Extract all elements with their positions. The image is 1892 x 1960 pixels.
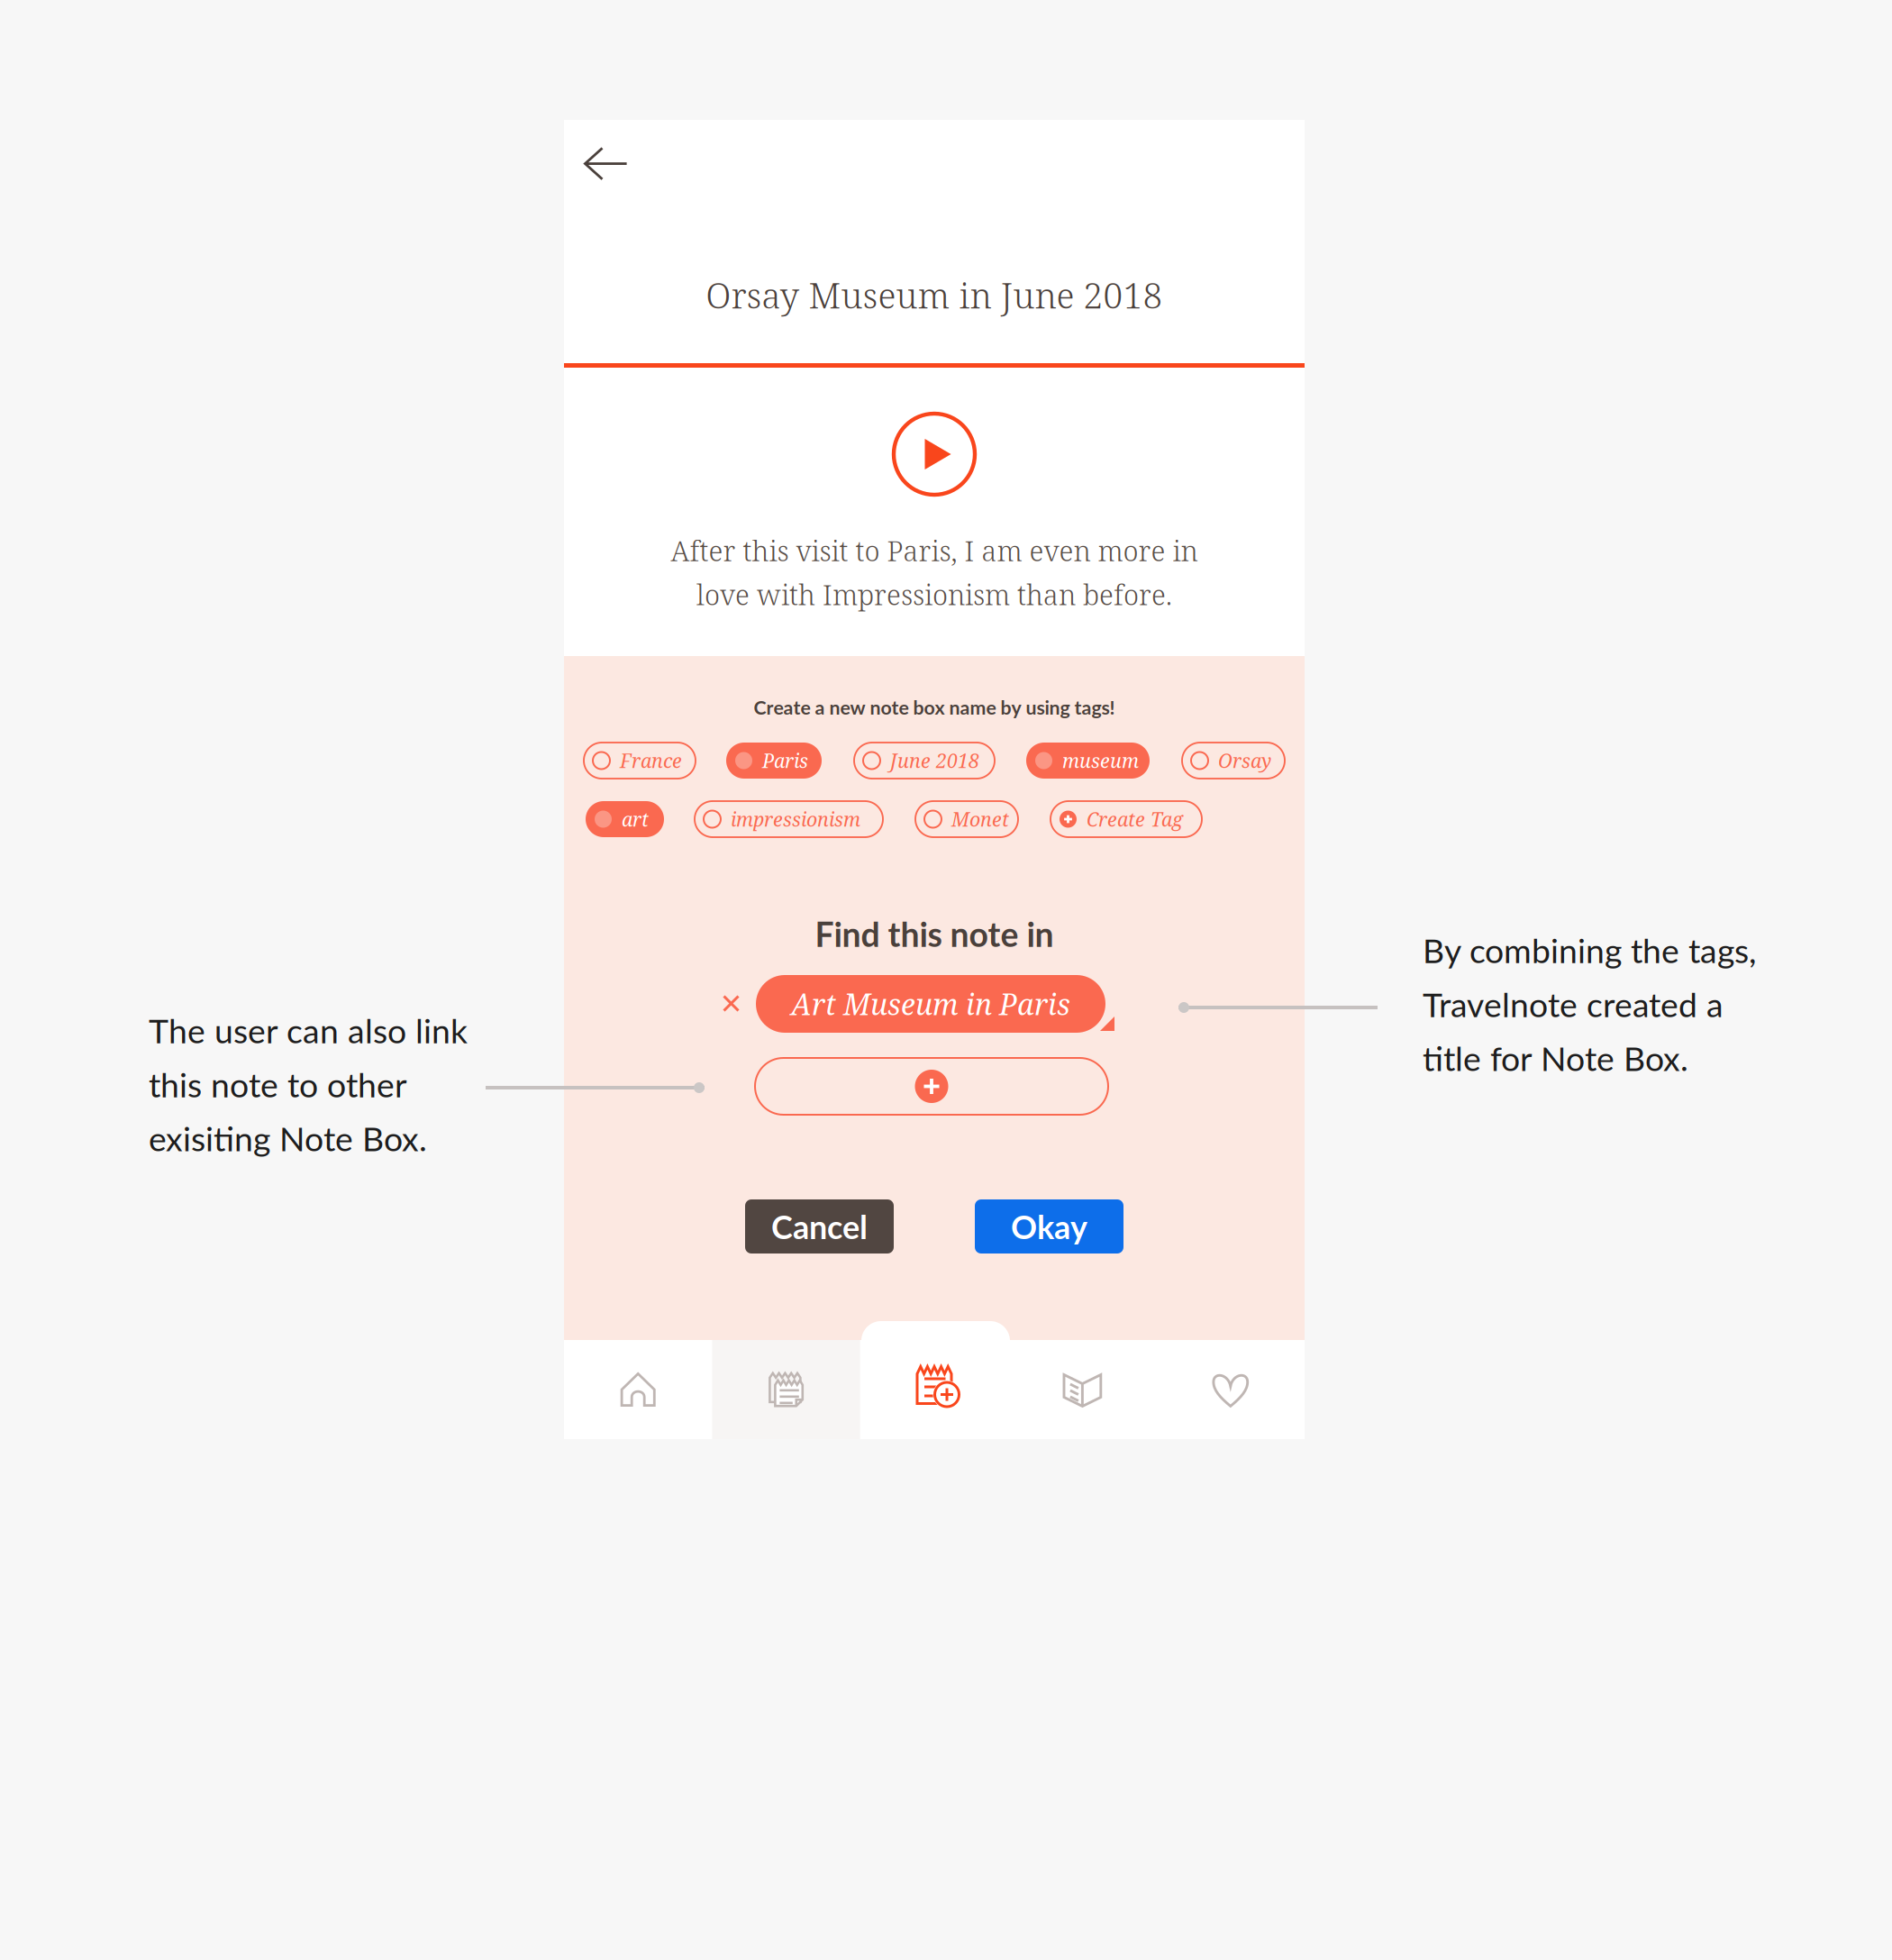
- staticText: By combining the tags,: [1423, 930, 1756, 970]
- staticText: Orsay Museum in June 2018: [706, 271, 1163, 319]
- button[interactable]: Paris: [726, 743, 822, 779]
- button[interactable]: Add to another note box: [755, 1058, 1108, 1115]
- staticText: museum: [1062, 748, 1139, 774]
- staticText: After this visit to Paris, I am even mor…: [671, 532, 1198, 569]
- staticText: Monet: [951, 806, 1009, 832]
- staticText: Create Tag: [1087, 806, 1183, 832]
- staticText: France: [620, 748, 682, 774]
- button[interactable]: Remove note box: [712, 984, 750, 1023]
- staticText: The user can also link: [149, 1010, 468, 1051]
- staticText: June 2018: [890, 748, 979, 774]
- button[interactable]: France: [584, 743, 696, 779]
- button[interactable]: Monet: [915, 801, 1018, 837]
- button[interactable]: June 2018: [854, 743, 995, 779]
- button[interactable]: art: [586, 801, 664, 837]
- staticText: art: [622, 806, 649, 832]
- staticText: Orsay: [1218, 748, 1271, 774]
- staticText: Find this note in: [815, 914, 1054, 954]
- button[interactable]: Back: [577, 140, 635, 187]
- staticText: Create a new note box name by using tags…: [754, 696, 1115, 719]
- button[interactable]: Art Museum in Paris: [756, 975, 1116, 1033]
- button[interactable]: Orsay: [1182, 743, 1285, 779]
- button[interactable]: Guide: [1008, 1340, 1156, 1439]
- button[interactable]: museum: [1026, 743, 1150, 779]
- button[interactable]: Favourites: [1156, 1340, 1305, 1439]
- staticText: impressionism: [731, 806, 860, 832]
- button[interactable]: Cancel: [745, 1199, 894, 1253]
- staticText: title for Note Box.: [1423, 1038, 1688, 1078]
- staticText: exisiting Note Box.: [149, 1118, 427, 1158]
- button[interactable]: Home: [564, 1340, 712, 1439]
- staticText: this note to other: [149, 1064, 407, 1104]
- button[interactable]: impressionism: [695, 801, 883, 837]
- button[interactable]: Okay: [975, 1199, 1123, 1253]
- staticText: Art Museum in Paris: [791, 984, 1070, 1024]
- staticText: Paris: [762, 748, 808, 774]
- staticText: Okay: [1011, 1207, 1087, 1246]
- button[interactable]: New note: [860, 1340, 1008, 1439]
- staticText: love with Impressionism than before.: [696, 576, 1172, 613]
- staticText: Cancel: [771, 1207, 868, 1246]
- button[interactable]: Notes: [712, 1340, 860, 1439]
- button[interactable]: Create Tag: [1051, 801, 1202, 837]
- staticText: Travelnote created a: [1423, 984, 1724, 1024]
